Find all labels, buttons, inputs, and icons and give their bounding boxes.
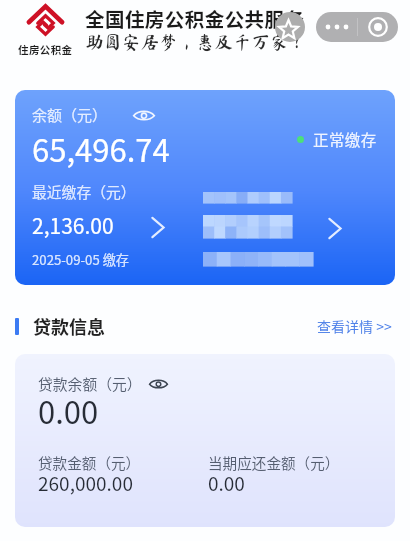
staticText: 贷款金额（元） — [38, 452, 141, 473]
staticText: 贷款信息 — [33, 313, 105, 339]
staticText: 当期应还金额（元） — [208, 452, 340, 473]
staticText: 全国住房公积金公共服务 — [85, 4, 305, 32]
staticText: 查看详情 >> — [317, 316, 392, 336]
staticText: 260,000.00 — [38, 469, 133, 497]
staticText: 最近缴存（元） — [32, 181, 136, 202]
button[interactable]: More — [316, 12, 357, 42]
staticText: 65,496.74 — [32, 126, 170, 171]
button[interactable]: Details — [328, 218, 342, 239]
staticText: 助圆安居梦，惠及千万家！ — [85, 33, 308, 52]
button[interactable]: Toggle balance visibility — [133, 110, 155, 121]
button[interactable]: Toggle loan balance visibility — [149, 379, 168, 389]
button[interactable]: 查看详情 >> — [317, 316, 392, 336]
button[interactable]: Favorite — [275, 12, 305, 42]
staticText: 正常缴存 — [313, 128, 377, 150]
staticText: 2025-09-05 缴存 — [32, 250, 130, 269]
staticText: 0.00 — [208, 469, 245, 497]
button[interactable]: 余额（元） — [15, 90, 395, 285]
staticText: 2,136.00 — [32, 210, 114, 240]
button[interactable]: Close — [357, 12, 398, 42]
button[interactable]: 贷款余额（元） — [15, 354, 395, 527]
staticText: 0.00 — [38, 388, 99, 433]
staticText: 住房公积金 — [18, 42, 73, 57]
staticText: 贷款余额（元） — [38, 373, 142, 394]
staticText: 余额（元） — [32, 104, 108, 126]
